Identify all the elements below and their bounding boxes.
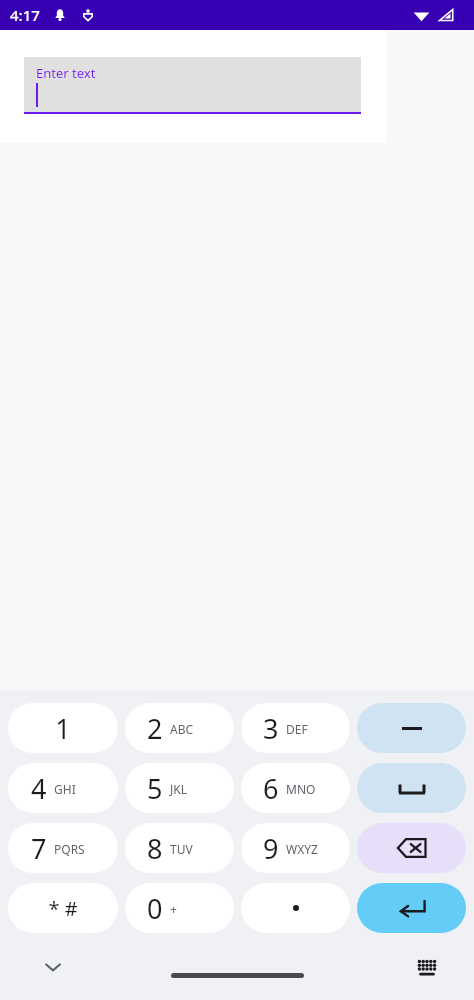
staticText: 6 bbox=[263, 770, 279, 807]
staticText: GHI bbox=[54, 781, 76, 797]
staticText: 8 bbox=[147, 830, 163, 867]
staticText: JKL bbox=[170, 781, 187, 797]
button[interactable]: Enter text bbox=[24, 57, 361, 114]
button[interactable]: 3 DEF bbox=[241, 703, 350, 753]
button[interactable]: 1 bbox=[8, 703, 118, 753]
staticText: Enter text bbox=[36, 64, 96, 82]
staticText: MNO bbox=[286, 781, 316, 797]
button[interactable]: 0 + bbox=[125, 883, 234, 933]
button[interactable]: Period bbox=[241, 883, 350, 933]
button[interactable]: Switch keyboard bbox=[410, 950, 444, 984]
staticText: 0 bbox=[147, 890, 163, 927]
button[interactable]: 6 MNO bbox=[241, 763, 350, 813]
staticText: + bbox=[170, 901, 177, 917]
button[interactable]: 4 GHI bbox=[8, 763, 118, 813]
button[interactable]: 8 TUV bbox=[125, 823, 234, 873]
button[interactable]: Hide keyboard bbox=[36, 950, 70, 984]
button[interactable]: Enter bbox=[357, 883, 466, 933]
button[interactable]: * # bbox=[8, 883, 118, 933]
button[interactable]: 2 ABC bbox=[125, 703, 234, 753]
staticText: ABC bbox=[170, 721, 194, 737]
staticText: 5 bbox=[147, 770, 163, 807]
button[interactable]: Dash bbox=[357, 703, 466, 753]
staticText: 2 bbox=[147, 710, 163, 747]
staticText: TUV bbox=[170, 841, 193, 857]
staticText: 7 bbox=[31, 830, 47, 867]
staticText: 9 bbox=[263, 830, 279, 867]
staticText: * # bbox=[48, 895, 78, 922]
button[interactable]: 7 PQRS bbox=[8, 823, 118, 873]
button[interactable]: Backspace bbox=[357, 823, 466, 873]
staticText: 1 bbox=[55, 710, 71, 747]
staticText: DEF bbox=[286, 721, 308, 737]
button[interactable]: Space bbox=[357, 763, 466, 813]
staticText: WXYZ bbox=[286, 841, 318, 857]
staticText: PQRS bbox=[54, 841, 85, 857]
button[interactable]: 9 WXYZ bbox=[241, 823, 350, 873]
staticText: 3 bbox=[263, 710, 279, 747]
staticText: 4:17 bbox=[10, 5, 40, 25]
button[interactable]: 5 JKL bbox=[125, 763, 234, 813]
staticText: 4 bbox=[31, 770, 47, 807]
